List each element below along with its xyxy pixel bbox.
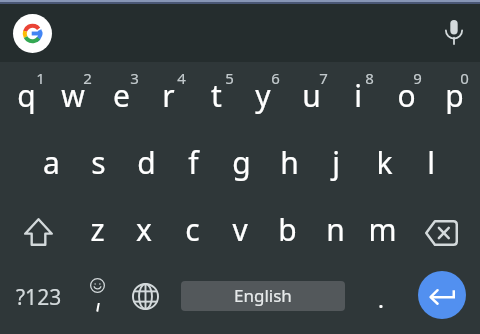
button[interactable]: a [27, 129, 75, 196]
button[interactable]: g [217, 129, 265, 196]
button[interactable]: Shift [9, 198, 67, 265]
staticText: o [397, 75, 416, 116]
button[interactable]: c [168, 196, 216, 263]
staticText: x [136, 209, 152, 250]
staticText: n [326, 209, 345, 250]
button[interactable]: h [265, 129, 313, 196]
staticText: 6 [271, 68, 280, 88]
button[interactable]: Enter [418, 271, 466, 319]
button[interactable]: Google Search [10, 11, 54, 55]
button[interactable]: x [120, 196, 168, 263]
button[interactable]: Change keyboard language [121, 262, 169, 328]
button[interactable]: y [239, 62, 287, 129]
staticText: t [211, 75, 222, 116]
button[interactable]: English [181, 281, 345, 311]
button[interactable]: d [122, 129, 170, 196]
staticText: e [113, 75, 130, 116]
button[interactable]: Voice input [434, 12, 474, 52]
staticText: c [185, 209, 200, 250]
staticText: r [162, 75, 175, 116]
staticText: h [280, 142, 299, 183]
staticText: w [61, 75, 85, 116]
button[interactable]: r [144, 62, 192, 129]
staticText: g [232, 142, 251, 183]
button[interactable]: o [382, 62, 430, 129]
button[interactable]: v [216, 196, 264, 263]
button[interactable]: z [73, 196, 121, 263]
staticText: q [17, 75, 36, 116]
staticText: l [427, 142, 435, 183]
button[interactable]: f [169, 129, 217, 196]
button[interactable]: m [358, 196, 406, 263]
staticText: v [232, 209, 248, 250]
staticText: z [90, 209, 105, 250]
button[interactable]: p [430, 62, 478, 129]
button[interactable]: s [74, 129, 122, 196]
button[interactable]: . [357, 263, 405, 329]
button[interactable]: w [49, 62, 97, 129]
staticText: English [234, 284, 292, 307]
button[interactable]: Emoji [73, 263, 121, 329]
staticText: j [332, 142, 340, 183]
staticText: f [188, 142, 199, 183]
button[interactable]: k [360, 129, 408, 196]
staticText: 8 [365, 68, 374, 88]
staticText: a [43, 142, 60, 183]
button[interactable]: l [407, 129, 455, 196]
staticText: 7 [319, 68, 328, 88]
button[interactable]: i [334, 62, 382, 129]
button[interactable]: ?123 [8, 263, 70, 329]
button[interactable]: u [287, 62, 335, 129]
staticText: i [354, 75, 362, 116]
staticText: s [91, 142, 106, 183]
staticText: y [255, 75, 271, 116]
staticText: k [376, 142, 393, 183]
button[interactable]: j [312, 129, 360, 196]
staticText: 4 [177, 68, 186, 88]
button[interactable]: t [192, 62, 240, 129]
button[interactable]: b [263, 196, 311, 263]
staticText: 3 [130, 68, 139, 88]
staticText: m [368, 209, 397, 250]
button[interactable]: e [97, 62, 145, 129]
button[interactable]: Backspace [412, 199, 470, 266]
staticText: 9 [413, 68, 422, 88]
staticText: u [302, 75, 321, 116]
staticText: b [278, 209, 297, 250]
staticText: d [137, 142, 156, 183]
staticText: . [378, 284, 384, 314]
staticText: 1 [36, 68, 45, 88]
button[interactable]: q [2, 62, 50, 129]
staticText: 5 [225, 68, 234, 88]
staticText: p [445, 75, 464, 116]
staticText: ?123 [16, 283, 62, 312]
button[interactable]: n [311, 196, 359, 263]
staticText: 0 [460, 68, 469, 88]
staticText: 2 [83, 68, 92, 88]
